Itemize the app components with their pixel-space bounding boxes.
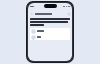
button[interactable]: Back: [30, 12, 34, 16]
button[interactable]: [30, 29, 70, 33]
button[interactable]: More options: [67, 12, 70, 15]
button[interactable]: [30, 35, 70, 39]
